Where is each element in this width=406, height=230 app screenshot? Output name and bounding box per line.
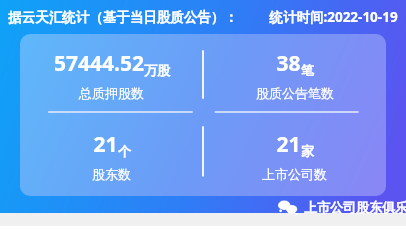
staticText: 据云天汇统计（基于当日股质公告）： — [8, 9, 238, 26]
button[interactable]: 21 — [203, 115, 386, 196]
staticText: 个 — [118, 143, 131, 159]
staticText: 38 — [276, 49, 301, 78]
button[interactable]: 21 — [20, 115, 203, 196]
staticText: 笔 — [301, 62, 314, 78]
staticText: 统计时间:2022-10-19 — [269, 8, 398, 26]
staticText: 上市公司股东俱乐部 — [304, 199, 406, 215]
staticText: 上市公司数 — [262, 166, 327, 182]
staticText: 总质押股数 — [79, 85, 144, 101]
staticText: 21 — [93, 130, 118, 159]
button[interactable]: WeChat — [276, 198, 406, 216]
staticText: 股东数 — [92, 166, 131, 182]
button[interactable]: 57444.52 — [20, 34, 203, 115]
other: WeChat — [278, 200, 298, 215]
button[interactable]: 38 — [203, 34, 386, 115]
staticText: 21 — [276, 130, 301, 159]
staticText: 57444.52 — [54, 49, 144, 78]
staticText: 股质公告笔数 — [256, 85, 334, 101]
staticText: 万股 — [144, 62, 170, 78]
staticText: 家 — [301, 143, 314, 159]
